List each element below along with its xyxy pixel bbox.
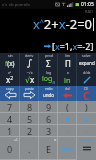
staticText: [x=1,x=-2]: [52, 40, 94, 52]
staticText: del: [65, 86, 71, 91]
staticText: x³: [8, 70, 12, 75]
button[interactable]: π: [39, 137, 58, 160]
staticText: copy: [6, 86, 14, 91]
button[interactable]: Summation: [39, 53, 58, 70]
button[interactable]: ): [77, 101, 96, 113]
staticText: CE: [84, 86, 89, 91]
button[interactable]: 8: [20, 101, 39, 113]
staticText: x2: [6, 74, 14, 85]
staticText: ∫: [27, 58, 32, 68]
staticText: loga: [42, 74, 56, 86]
staticText: result: [82, 137, 92, 142]
staticText: f(x): [5, 59, 15, 68]
staticText: 3: [46, 125, 52, 137]
staticText: (: [66, 101, 69, 113]
staticText: +/-: [14, 137, 19, 142]
staticText: e: [67, 70, 69, 75]
staticText: sin: [8, 53, 13, 58]
button[interactable]: Natural logarithm: [58, 70, 77, 86]
staticText: Σ: [46, 58, 51, 69]
button[interactable]: .: [20, 137, 39, 160]
button[interactable]: ×: [58, 113, 77, 125]
button[interactable]: +: [58, 125, 77, 137]
staticText: solve: [82, 53, 91, 58]
button[interactable]: Clear: [77, 86, 96, 101]
button[interactable]: 4: [0, 113, 20, 125]
staticText: d/dx: [83, 70, 91, 75]
staticText: 01:05: [81, 1, 94, 8]
staticText: undo: [43, 92, 55, 98]
button[interactable]: Integral: [20, 53, 39, 70]
button[interactable]: 7: [0, 101, 20, 113]
staticText: √x: [25, 74, 35, 85]
staticText: redo: [45, 86, 53, 91]
staticText: 9: [46, 101, 52, 113]
button[interactable]: Move left: [0, 86, 20, 101]
button[interactable]: Backspace: [58, 86, 77, 101]
staticText: ⁿ√x: [27, 70, 33, 75]
staticText: +: [65, 125, 71, 137]
staticText: 1: [7, 125, 13, 137]
staticText: deriv: [25, 53, 34, 58]
staticText: RAD: [85, 9, 93, 14]
staticText: mod: [62, 145, 74, 152]
button[interactable]: Equals: [77, 137, 96, 160]
staticText: 6: [46, 113, 52, 125]
staticText: 8: [27, 101, 33, 113]
staticText: π: [54, 137, 57, 142]
staticText: paste: [25, 86, 35, 91]
staticText: 0: [7, 143, 13, 155]
staticText: C: [83, 89, 90, 101]
button[interactable]: Move right: [20, 86, 39, 101]
button[interactable]: ÷: [77, 113, 96, 125]
staticText: Π: [65, 58, 71, 69]
staticText: ): [85, 101, 88, 113]
button[interactable]: −: [77, 125, 96, 137]
button[interactable]: 5: [20, 113, 39, 125]
button[interactable]: x squared: [0, 70, 20, 86]
staticText: log: [46, 70, 52, 75]
button[interactable]: Undo: [39, 86, 58, 101]
button[interactable]: Square root: [20, 70, 39, 86]
button[interactable]: Logarithm base ten: [39, 70, 58, 86]
staticText: 2: [27, 125, 33, 137]
staticText: x^2+x-2=0: [32, 15, 92, 33]
button[interactable]: 9: [39, 101, 58, 113]
button[interactable]: 1: [0, 125, 20, 137]
staticText: −: [84, 125, 90, 137]
staticText: ln: [64, 75, 71, 85]
staticText: E: [46, 143, 52, 155]
button[interactable]: +/-: [0, 137, 20, 160]
staticText: .: [28, 143, 31, 155]
button[interactable]: 3: [39, 125, 58, 137]
button[interactable]: Derivative: [77, 70, 96, 86]
button[interactable]: 6: [39, 113, 58, 125]
staticText: 5: [27, 113, 33, 125]
staticText: 4: [7, 113, 13, 125]
button[interactable]: Expand: [77, 53, 96, 70]
staticText: lim: [65, 53, 71, 58]
staticText: x's nb ponrofo: [2, 2, 31, 7]
staticText: expand: [79, 60, 95, 66]
button[interactable]: Function f of x: [0, 53, 20, 70]
staticText: ÷: [84, 113, 90, 125]
staticText: ×: [65, 113, 71, 125]
staticText: prod: [45, 53, 53, 58]
button[interactable]: 2: [20, 125, 39, 137]
button[interactable]: (: [58, 101, 77, 113]
button[interactable]: mod: [58, 137, 77, 160]
staticText: 7: [7, 101, 13, 113]
button[interactable]: Product: [58, 53, 77, 70]
